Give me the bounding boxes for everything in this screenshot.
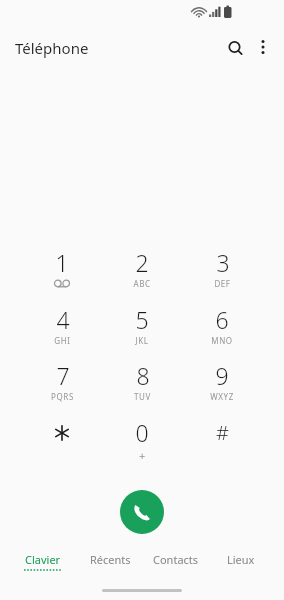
staticText: JKL xyxy=(135,335,149,346)
button[interactable]: 7 xyxy=(28,360,96,410)
staticText: Clavier xyxy=(25,552,61,567)
staticText: 5 xyxy=(135,304,149,334)
button[interactable]: 9 xyxy=(188,360,256,410)
staticText: 8 xyxy=(136,360,150,390)
button[interactable]: 4 xyxy=(28,304,96,354)
button[interactable] xyxy=(28,417,96,467)
button[interactable]: Contacts xyxy=(141,552,211,580)
button[interactable]: Search xyxy=(221,34,249,62)
staticText: 7 xyxy=(56,360,70,390)
staticText: Lieux xyxy=(227,552,255,567)
button[interactable]: Lieux xyxy=(215,552,267,580)
staticText: 3 xyxy=(216,247,230,277)
staticText: 4 xyxy=(56,304,70,334)
button[interactable]: 5 xyxy=(108,304,176,354)
staticText: # xyxy=(216,419,229,446)
staticText: ABC xyxy=(133,278,151,289)
button[interactable]: 3 xyxy=(188,247,256,297)
button[interactable]: More options xyxy=(250,35,276,61)
staticText: 0 xyxy=(135,417,149,447)
button[interactable]: Récents xyxy=(78,552,142,580)
button[interactable]: 6 xyxy=(188,304,256,354)
staticText: WXYZ xyxy=(210,391,234,402)
staticText: GHI xyxy=(54,335,71,346)
staticText: DEF xyxy=(214,278,231,289)
staticText: + xyxy=(139,448,146,463)
button[interactable]: 2 xyxy=(108,247,176,297)
staticText: TUV xyxy=(134,391,151,402)
staticText: Récents xyxy=(90,552,131,567)
staticText: 9 xyxy=(215,360,229,390)
staticText: 2 xyxy=(135,247,149,277)
button[interactable]: # xyxy=(188,417,256,467)
staticText: Téléphone xyxy=(15,38,89,58)
button[interactable]: 1 xyxy=(28,247,96,297)
staticText: PQRS xyxy=(51,391,74,402)
staticText: Contacts xyxy=(153,552,199,567)
staticText: MNO xyxy=(211,335,233,346)
button[interactable]: Call xyxy=(120,490,164,534)
staticText: 6 xyxy=(215,304,229,334)
staticText: 1 xyxy=(55,247,69,277)
button[interactable]: 0 xyxy=(108,417,176,467)
button[interactable]: Clavier xyxy=(13,552,73,580)
button[interactable]: 8 xyxy=(108,360,176,410)
